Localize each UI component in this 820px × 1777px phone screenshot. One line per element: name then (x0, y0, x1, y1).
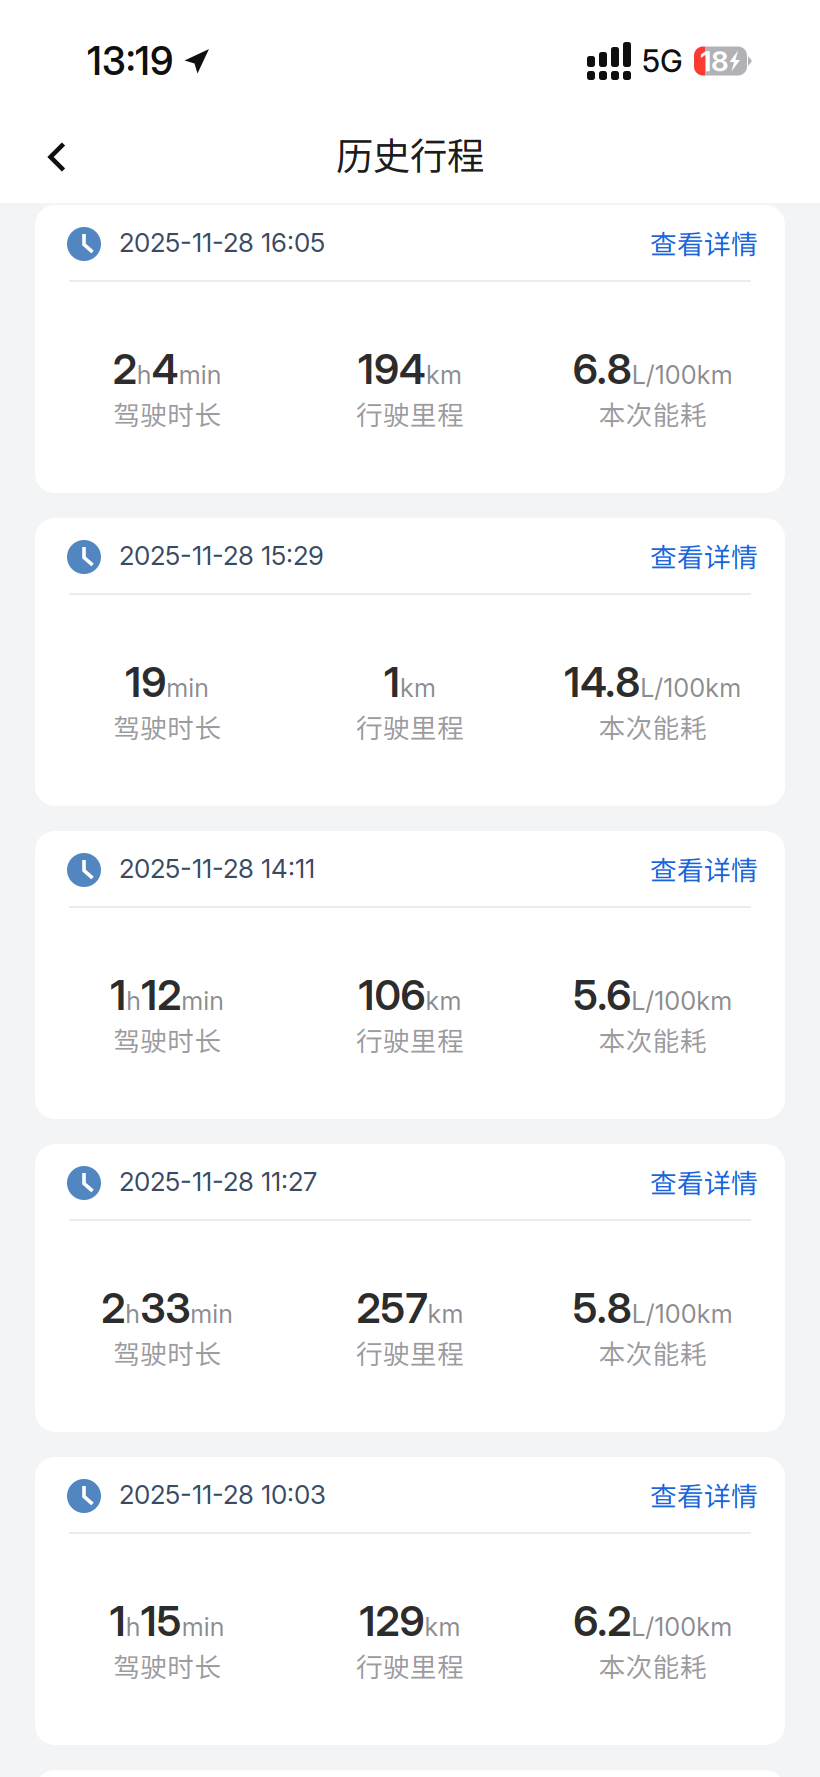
staticText: 2025-11-28 15:29 (119, 540, 324, 571)
staticText: 2 (113, 344, 137, 394)
staticText: 本次能耗 (599, 707, 707, 746)
staticText: min (166, 672, 209, 703)
staticText: 驾驶时长 (113, 1333, 221, 1372)
button[interactable]: 返回 (24, 124, 90, 190)
staticText: 本次能耗 (599, 1020, 707, 1059)
staticText: 12 (141, 970, 181, 1020)
staticText: 5.6 (573, 970, 631, 1020)
staticText: 2025-11-28 16:05 (119, 227, 325, 258)
staticText: 6.2 (573, 1596, 631, 1646)
staticText: 驾驶时长 (113, 707, 221, 746)
staticText: h (137, 359, 152, 390)
staticText: 查看详情 (650, 1475, 758, 1514)
staticText: 6.8 (573, 344, 632, 394)
staticText: km (424, 1611, 460, 1642)
staticText: 查看详情 (650, 536, 758, 575)
staticText: 2 (101, 1283, 125, 1333)
button[interactable]: 查看详情 (650, 536, 758, 575)
staticText: L/100km (632, 359, 733, 390)
staticText: L/100km (632, 1298, 733, 1329)
staticText: 33 (140, 1283, 190, 1333)
staticText: 2025-11-28 14:11 (119, 853, 315, 884)
staticText: 历史行程 (336, 126, 484, 181)
staticText: 行驶里程 (356, 1020, 464, 1059)
button[interactable]: 查看详情 (650, 1162, 758, 1201)
staticText: L/100km (631, 1611, 732, 1642)
button[interactable]: 2025-11-28 16:05 (35, 205, 785, 493)
staticText: 5G (642, 42, 683, 79)
staticText: 4 (152, 344, 179, 394)
staticText: 18 (700, 44, 729, 78)
staticText: 查看详情 (650, 1162, 758, 1201)
staticText: 194 (358, 344, 426, 394)
staticText: 13:19 (87, 38, 173, 84)
staticText: 2025-11-28 11:27 (119, 1166, 317, 1197)
staticText: 查看详情 (650, 223, 758, 262)
staticText: 驾驶时长 (113, 394, 221, 433)
staticText: 1 (384, 657, 400, 707)
staticText: 驾驶时长 (113, 1020, 221, 1059)
staticText: 行驶里程 (356, 707, 464, 746)
staticText: 查看详情 (650, 849, 758, 888)
staticText: 257 (356, 1283, 427, 1333)
button[interactable]: 查看详情 (650, 223, 758, 262)
staticText: 19 (125, 657, 166, 707)
staticText: 驾驶时长 (113, 1646, 221, 1685)
staticText: h (125, 1298, 140, 1329)
staticText: 行驶里程 (356, 1646, 464, 1685)
staticText: 1 (110, 970, 126, 1020)
staticText: km (426, 359, 462, 390)
staticText: L/100km (640, 672, 741, 703)
staticText: 行驶里程 (356, 1333, 464, 1372)
button[interactable]: 2025-11-28 14:11 (35, 831, 785, 1119)
staticText: 本次能耗 (599, 394, 707, 433)
staticText: 5.8 (573, 1283, 632, 1333)
button[interactable]: 查看详情 (650, 849, 758, 888)
staticText: 15 (141, 1596, 182, 1646)
staticText: 本次能耗 (599, 1646, 707, 1685)
button[interactable]: 查看详情 (650, 1475, 758, 1514)
staticText: 129 (359, 1596, 424, 1646)
staticText: h (126, 1611, 141, 1642)
staticText: km (400, 672, 436, 703)
staticText: km (427, 1298, 463, 1329)
staticText: min (179, 359, 222, 390)
button[interactable]: 2025-11-28 15:29 (35, 518, 785, 806)
staticText: h (126, 985, 141, 1016)
staticText: km (425, 985, 461, 1016)
staticText: 106 (358, 970, 425, 1020)
staticText: 2025-11-28 10:03 (119, 1479, 326, 1510)
staticText: min (190, 1298, 233, 1329)
button[interactable]: 2025-11-28 10:03 (35, 1457, 785, 1745)
staticText: 14.8 (564, 657, 640, 707)
staticText: 1 (110, 1596, 126, 1646)
staticText: 行驶里程 (356, 394, 464, 433)
staticText: 本次能耗 (599, 1333, 707, 1372)
staticText: min (181, 985, 224, 1016)
button[interactable]: 2025-11-28 11:27 (35, 1144, 785, 1432)
staticText: L/100km (631, 985, 732, 1016)
staticText: min (182, 1611, 225, 1642)
